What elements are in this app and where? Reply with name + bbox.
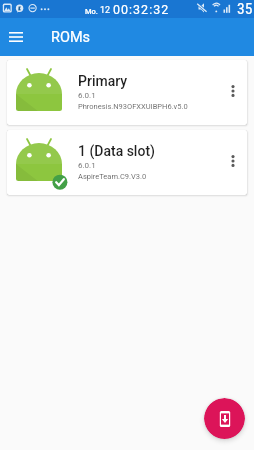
- staticText: 00:32:32: [113, 2, 170, 17]
- button[interactable]: Primary: [7, 60, 247, 125]
- staticText: Phronesis.N93OFXXUIBPH6.v5.0: [78, 102, 188, 111]
- staticText: Primary: [78, 73, 128, 89]
- staticText: 35: [237, 0, 253, 18]
- button[interactable]: More options: [219, 60, 247, 125]
- staticText: 6.0.1: [78, 91, 96, 100]
- staticText: 6.0.1: [78, 161, 96, 170]
- button[interactable]: More options: [219, 130, 247, 195]
- button[interactable]: Open navigation drawer: [5, 26, 27, 48]
- staticText: Mo.: [85, 7, 100, 16]
- button[interactable]: 1 (Data slot): [7, 130, 247, 195]
- staticText: 12: [100, 5, 111, 16]
- staticText: ROMs: [51, 29, 91, 46]
- staticText: 1 (Data slot): [78, 143, 155, 159]
- button[interactable]: Install ROM: [204, 398, 245, 439]
- staticText: AspireTeam.C9.V3.0: [78, 172, 147, 181]
